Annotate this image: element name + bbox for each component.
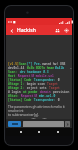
staticText: Transponder: bbox=[32, 78, 56, 82]
button[interactable]: Send bbox=[65, 121, 70, 127]
staticText: 0x3b BOOTo hmae bbox=[27, 66, 55, 70]
button[interactable]: Mode bbox=[8, 121, 21, 127]
staticText: The parameters gh attri mech melio it re… bbox=[8, 105, 70, 117]
staticText: 0 bbox=[56, 98, 60, 102]
staticText: #Stage 2: bbox=[8, 86, 25, 90]
staticText: [*] Pre- bbox=[27, 62, 42, 66]
button[interactable]: Home bbox=[35, 128, 43, 136]
button[interactable]: Recents bbox=[54, 128, 62, 136]
staticText: provisioned bbox=[53, 90, 70, 94]
staticText: dev hardware 0.3 bbox=[18, 70, 49, 74]
button[interactable]: Contacts bbox=[53, 26, 61, 34]
staticText: Scan bbox=[19, 62, 27, 66]
staticText: Reqwest/0 mobile.url bbox=[16, 74, 54, 78]
button[interactable]: Back bbox=[8, 27, 15, 34]
staticText: Reqwest/0 bbox=[19, 94, 39, 98]
staticText: reject sets bbox=[25, 86, 49, 90]
button[interactable]: Settings bbox=[62, 26, 70, 34]
staticText: Scan: bbox=[8, 70, 18, 74]
staticText: dev0x1.44 bbox=[8, 66, 27, 70]
staticText: #Stat: bbox=[8, 94, 19, 98]
staticText: #Stage 1: bbox=[8, 82, 25, 86]
staticText: [Status] Code bbox=[8, 98, 32, 102]
staticText: [Status] Code bbox=[8, 78, 32, 82]
staticText: [v1.5] bbox=[8, 62, 19, 66]
staticText: mbn.url.0 bbox=[39, 94, 56, 98]
staticText: Hackish bbox=[17, 27, 36, 34]
staticText: owned hw/ USB ch bbox=[42, 62, 70, 66]
staticText: at probe bbox=[23, 90, 38, 94]
button[interactable]: Back bbox=[17, 128, 25, 136]
staticText: # login bbox=[8, 90, 23, 94]
staticText: Target constraint bbox=[47, 82, 70, 86]
staticText: begin scan bbox=[25, 82, 47, 86]
staticText: Host bbox=[8, 74, 16, 78]
staticText: 0x4lb 0x70 bbox=[55, 66, 70, 70]
staticText: 0 bbox=[56, 78, 60, 82]
staticText: Target constraint bbox=[49, 86, 70, 90]
staticText: Transponder: bbox=[32, 98, 56, 102]
staticText: domain bbox=[38, 90, 53, 94]
